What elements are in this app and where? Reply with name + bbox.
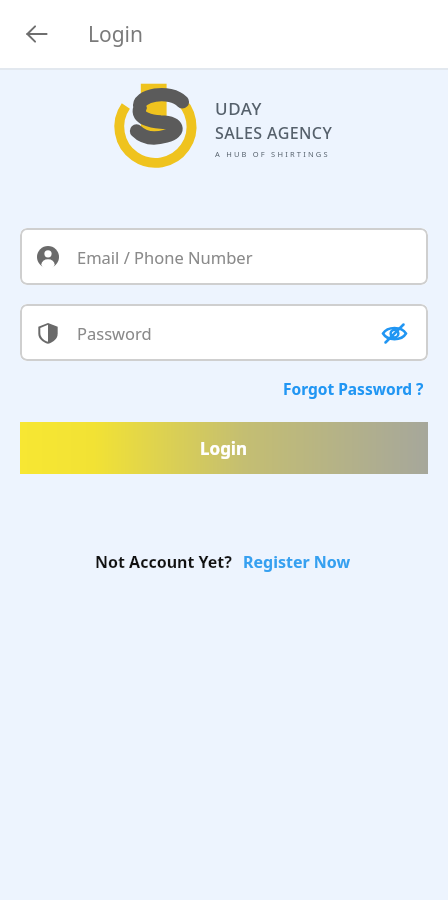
button[interactable]: Back: [13, 10, 61, 58]
staticText: A HUB OF SHIRTINGS: [215, 149, 330, 159]
staticText: Register Now: [243, 551, 351, 573]
staticText: UDAY: [215, 97, 263, 120]
staticText: Not Account Yet?: [95, 551, 232, 573]
staticText: Login: [200, 437, 248, 460]
button[interactable]: Toggle password visibility: [377, 316, 411, 350]
button[interactable]: Forgot Password ?: [279, 374, 428, 403]
staticText: Email / Phone Number: [77, 246, 411, 268]
staticText: Login: [88, 20, 144, 49]
button[interactable]: Email / Phone Number: [20, 228, 428, 285]
button[interactable]: Password: [20, 304, 428, 361]
staticText: SALES AGENCY: [215, 122, 333, 144]
button[interactable]: Login: [20, 422, 428, 474]
button[interactable]: Register Now: [241, 547, 353, 577]
staticText: Password: [77, 322, 377, 344]
staticText: Forgot Password ?: [283, 378, 424, 399]
